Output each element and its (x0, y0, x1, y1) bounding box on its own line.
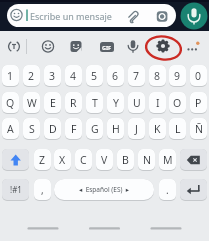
staticText: Escribe un mensaje (30, 10, 112, 22)
button[interactable]: N (138, 149, 155, 171)
staticText: 7 (133, 69, 140, 83)
button[interactable]: 4 (65, 65, 82, 87)
button[interactable]: GIF (100, 42, 114, 52)
button[interactable]: B (117, 149, 134, 171)
button[interactable]: L (169, 118, 186, 140)
button[interactable]: , (34, 179, 51, 201)
button[interactable]: A (2, 118, 19, 140)
staticText: . (166, 183, 169, 197)
button[interactable]: 9 (169, 65, 186, 87)
staticText: 2 (28, 69, 35, 83)
staticText: Q (6, 96, 15, 110)
staticText: 1 (7, 69, 14, 83)
staticText: 0 (195, 69, 202, 83)
staticText: V (101, 153, 108, 167)
button[interactable]: Z (34, 149, 51, 171)
button[interactable]: Q (2, 92, 19, 114)
staticText: J (135, 122, 138, 136)
staticText: C (80, 153, 87, 167)
staticText: Y (113, 96, 119, 110)
staticText: O (173, 96, 182, 110)
staticText: I (156, 96, 160, 110)
button[interactable]: Ñ (190, 118, 207, 140)
button[interactable]: J (128, 118, 145, 140)
button[interactable]: 7 (128, 65, 145, 87)
staticText: Ñ (195, 122, 203, 136)
button[interactable]: C (75, 149, 92, 171)
button[interactable]: P (190, 92, 207, 114)
staticText: T (92, 96, 98, 110)
button[interactable]: 0 (190, 65, 207, 87)
button[interactable]: R (65, 92, 82, 114)
button[interactable] (180, 179, 207, 201)
button[interactable]: 1 (2, 65, 19, 87)
button[interactable]: U (128, 92, 145, 114)
button[interactable]: 6 (107, 65, 124, 87)
button[interactable]: E (44, 92, 61, 114)
button[interactable]: 2 (23, 65, 40, 87)
staticText: G (91, 122, 99, 136)
button[interactable]: W (23, 92, 40, 114)
staticText: L (175, 122, 181, 136)
staticText: D (49, 122, 57, 136)
button[interactable]: F (65, 118, 82, 140)
staticText: N (143, 153, 151, 167)
button[interactable]: O (169, 92, 186, 114)
button[interactable]: K (149, 118, 166, 140)
staticText: ◂ Español (ES) ▸ (79, 185, 130, 194)
staticText: K (154, 122, 161, 136)
staticText: B (122, 153, 129, 167)
button[interactable]: S (23, 118, 40, 140)
staticText: H (112, 122, 120, 136)
staticText: W (27, 96, 37, 110)
staticText: F (71, 122, 77, 136)
button[interactable]: X (54, 149, 71, 171)
staticText: U (133, 96, 141, 110)
button[interactable]: G (86, 118, 103, 140)
button[interactable]: 5 (86, 65, 103, 87)
staticText: , (41, 183, 44, 197)
staticText: P (195, 96, 202, 110)
button[interactable] (181, 3, 208, 30)
staticText: E (50, 96, 56, 110)
staticText: M (163, 153, 173, 167)
button[interactable]: Y (107, 92, 124, 114)
staticText: 6 (112, 69, 119, 83)
button[interactable]: V (96, 149, 113, 171)
button[interactable]: M (159, 149, 176, 171)
staticText: 3 (49, 69, 56, 83)
button[interactable] (2, 149, 29, 171)
button[interactable]: H (107, 118, 124, 140)
staticText: 5 (91, 69, 98, 83)
staticText: GIF (102, 44, 112, 51)
staticText: S (29, 122, 35, 136)
button[interactable]: . (159, 179, 176, 201)
button[interactable]: 3 (44, 65, 61, 87)
staticText: X (59, 153, 66, 167)
staticText: !#1 (10, 184, 22, 195)
staticText: A (7, 122, 14, 136)
staticText: 8 (154, 69, 161, 83)
button[interactable]: T (86, 92, 103, 114)
button[interactable] (180, 149, 207, 171)
staticText: 9 (174, 69, 181, 83)
staticText: R (70, 96, 77, 110)
staticText: 4 (70, 69, 77, 83)
staticText: Z (39, 153, 46, 167)
button[interactable]: 8 (149, 65, 166, 87)
button[interactable]: D (44, 118, 61, 140)
button[interactable]: !#1 (2, 179, 29, 201)
button[interactable] (7, 4, 176, 27)
button[interactable]: ◂ Español (ES) ▸ (54, 179, 154, 201)
button[interactable]: I (149, 92, 166, 114)
